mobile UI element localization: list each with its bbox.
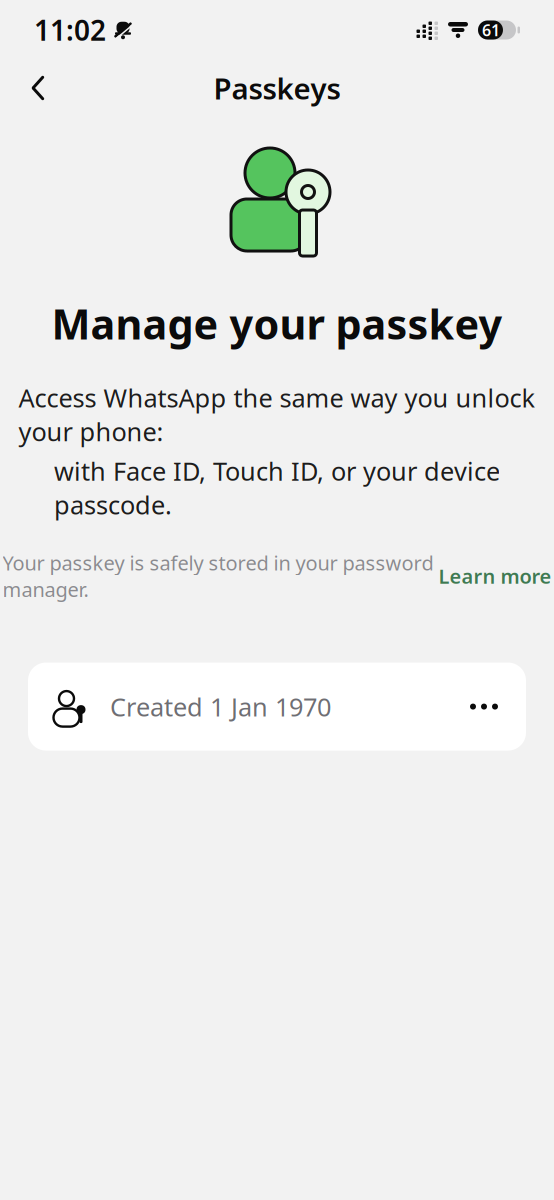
staticText: Learn more (438, 563, 551, 589)
button[interactable]: Created 1 Jan 1970 (28, 663, 526, 751)
staticText: Manage your passkey (51, 296, 502, 351)
button[interactable]: Your passkey is safely stored in your pa… (2, 545, 551, 607)
staticText: Your passkey is safely stored in your pa… (2, 549, 433, 603)
staticText: Access WhatsApp the same way you unlock … (18, 381, 535, 448)
staticText: 11:02 (34, 11, 106, 49)
staticText: Passkeys (213, 68, 340, 107)
staticText: with Face ID, Touch ID, or your device p… (54, 454, 500, 521)
button[interactable]: Back (12, 62, 64, 114)
staticText: 61 (482, 19, 500, 41)
staticText: Created 1 Jan 1970 (110, 690, 331, 723)
